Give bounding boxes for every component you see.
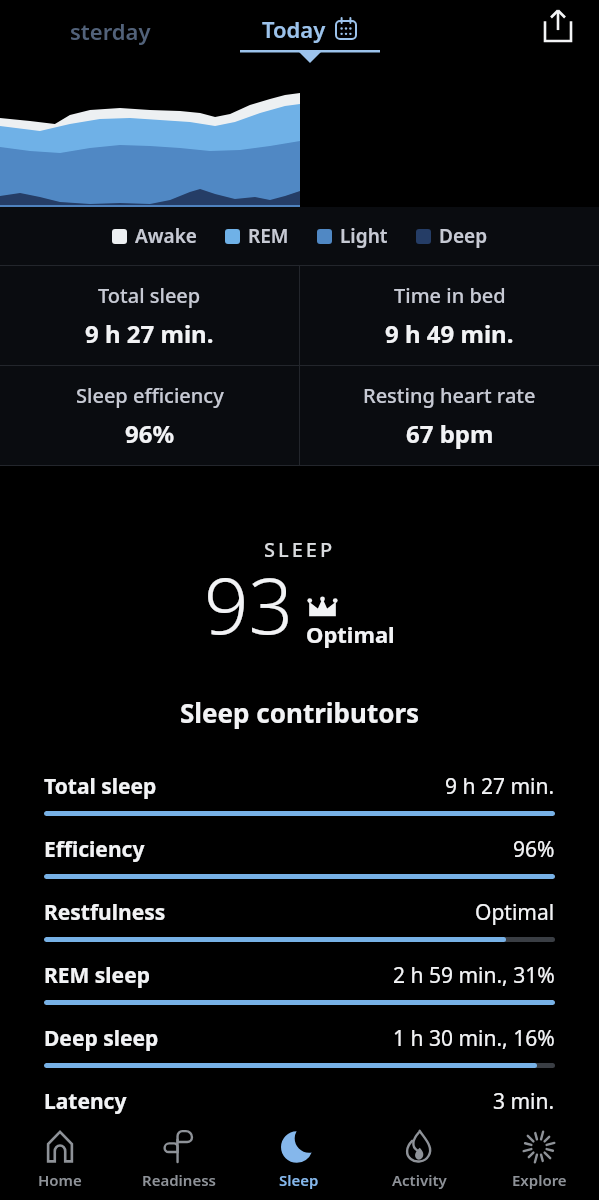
staticText: Awake bbox=[135, 223, 197, 249]
staticText: Resting heart rate bbox=[363, 382, 536, 409]
staticText: 3 min. bbox=[493, 1087, 555, 1116]
button[interactable]: Time in bed bbox=[300, 266, 599, 365]
button[interactable] bbox=[543, 9, 573, 43]
staticText: Efficiency bbox=[44, 835, 145, 864]
staticText: 9 h 27 min. bbox=[85, 317, 214, 350]
staticText: Home bbox=[38, 1170, 82, 1190]
staticText: Total sleep bbox=[44, 772, 157, 801]
staticText: Deep bbox=[439, 223, 488, 249]
button[interactable]: Total sleep bbox=[0, 266, 299, 365]
button[interactable]: Total sleep bbox=[44, 772, 555, 835]
staticText: Optimal bbox=[475, 898, 555, 927]
staticText: 9 h 27 min. bbox=[445, 772, 555, 801]
staticText: REM sleep bbox=[44, 961, 150, 990]
staticText: SLEEP bbox=[264, 536, 336, 563]
staticText: 93 bbox=[204, 551, 294, 657]
staticText: 96% bbox=[125, 417, 175, 450]
staticText: Total sleep bbox=[98, 282, 201, 309]
staticText: Time in bed bbox=[394, 282, 506, 309]
button[interactable]: Deep sleep bbox=[44, 1024, 555, 1087]
staticText: 67 bpm bbox=[406, 417, 494, 450]
button[interactable]: Today bbox=[262, 14, 357, 44]
staticText: Sleep contributors bbox=[180, 695, 420, 730]
staticText: Today bbox=[262, 14, 326, 44]
button[interactable]: Restfulness bbox=[44, 898, 555, 961]
staticText: Sleep bbox=[279, 1170, 319, 1190]
staticText: Restfulness bbox=[44, 898, 166, 927]
staticText: 2 h 59 min., 31% bbox=[393, 961, 555, 990]
staticText: sterday bbox=[70, 16, 151, 46]
staticText: Activity bbox=[392, 1170, 447, 1190]
staticText: Sleep efficiency bbox=[76, 382, 224, 409]
staticText: 96% bbox=[513, 835, 555, 864]
staticText: REM bbox=[248, 223, 289, 249]
staticText: Optimal bbox=[306, 619, 395, 649]
button[interactable]: Latency bbox=[44, 1087, 555, 1150]
button[interactable]: Sleep bbox=[239, 1118, 359, 1200]
button[interactable]: Home bbox=[0, 1118, 119, 1200]
staticText: 1 h 30 min., 16% bbox=[393, 1024, 555, 1053]
staticText: Light bbox=[340, 223, 388, 249]
staticText: Explore bbox=[512, 1170, 567, 1190]
button[interactable]: Readiness bbox=[119, 1118, 239, 1200]
button[interactable]: Explore bbox=[479, 1118, 599, 1200]
staticText: Latency bbox=[44, 1087, 127, 1116]
staticText: 9 h 49 min. bbox=[385, 317, 514, 350]
button[interactable]: Efficiency bbox=[44, 835, 555, 898]
button[interactable]: Activity bbox=[359, 1118, 479, 1200]
button[interactable]: Sleep efficiency bbox=[0, 366, 299, 465]
staticText: Deep sleep bbox=[44, 1024, 159, 1053]
button[interactable]: REM sleep bbox=[44, 961, 555, 1024]
button[interactable]: Resting heart rate bbox=[300, 366, 599, 465]
staticText: Readiness bbox=[142, 1170, 216, 1190]
